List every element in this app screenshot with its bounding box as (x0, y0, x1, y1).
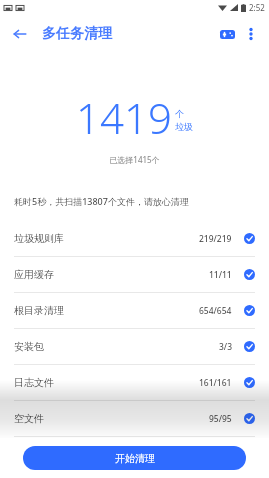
staticText: 耗时5秒，共扫描13807个文件，请放心清理 (14, 195, 189, 207)
staticText: 根目录清理 (14, 304, 199, 317)
staticText: 开始清理 (115, 452, 155, 465)
staticText: 已选择1415个 (109, 154, 160, 165)
staticText: 安装包 (14, 340, 219, 353)
button[interactable]: 应用缓存 (0, 257, 269, 292)
button[interactable]: Back (8, 22, 32, 46)
staticText: 垃圾 (175, 121, 193, 132)
staticText: 95/95 (209, 413, 232, 425)
button[interactable]: 临时文件 (0, 437, 269, 472)
staticText: 3/3 (219, 341, 232, 353)
staticText: 1419 (76, 89, 172, 146)
staticText: 应用缓存 (14, 268, 209, 281)
staticText: 219/219 (199, 233, 232, 245)
staticText: 日志文件 (14, 376, 199, 389)
button[interactable]: More options (239, 22, 263, 46)
staticText: 多任务清理 (42, 25, 112, 43)
button[interactable]: 安装包 (0, 329, 269, 364)
button[interactable]: Game boost (215, 22, 239, 46)
staticText: 654/654 (199, 305, 232, 317)
button[interactable]: 根目录清理 (0, 293, 269, 328)
staticText: 161/161 (199, 377, 232, 389)
staticText: 2:52 (249, 2, 265, 13)
staticText: 垃圾规则库 (14, 232, 199, 245)
staticText: 临时文件 (14, 448, 209, 461)
button[interactable]: 开始清理 (23, 446, 246, 470)
button[interactable]: 垃圾规则库 (0, 221, 269, 256)
staticText: 空文件 (14, 412, 209, 425)
staticText: 个 (175, 108, 184, 119)
button[interactable]: 日志文件 (0, 365, 269, 400)
staticText: 11/11 (209, 269, 232, 281)
button[interactable]: 空文件 (0, 401, 269, 436)
